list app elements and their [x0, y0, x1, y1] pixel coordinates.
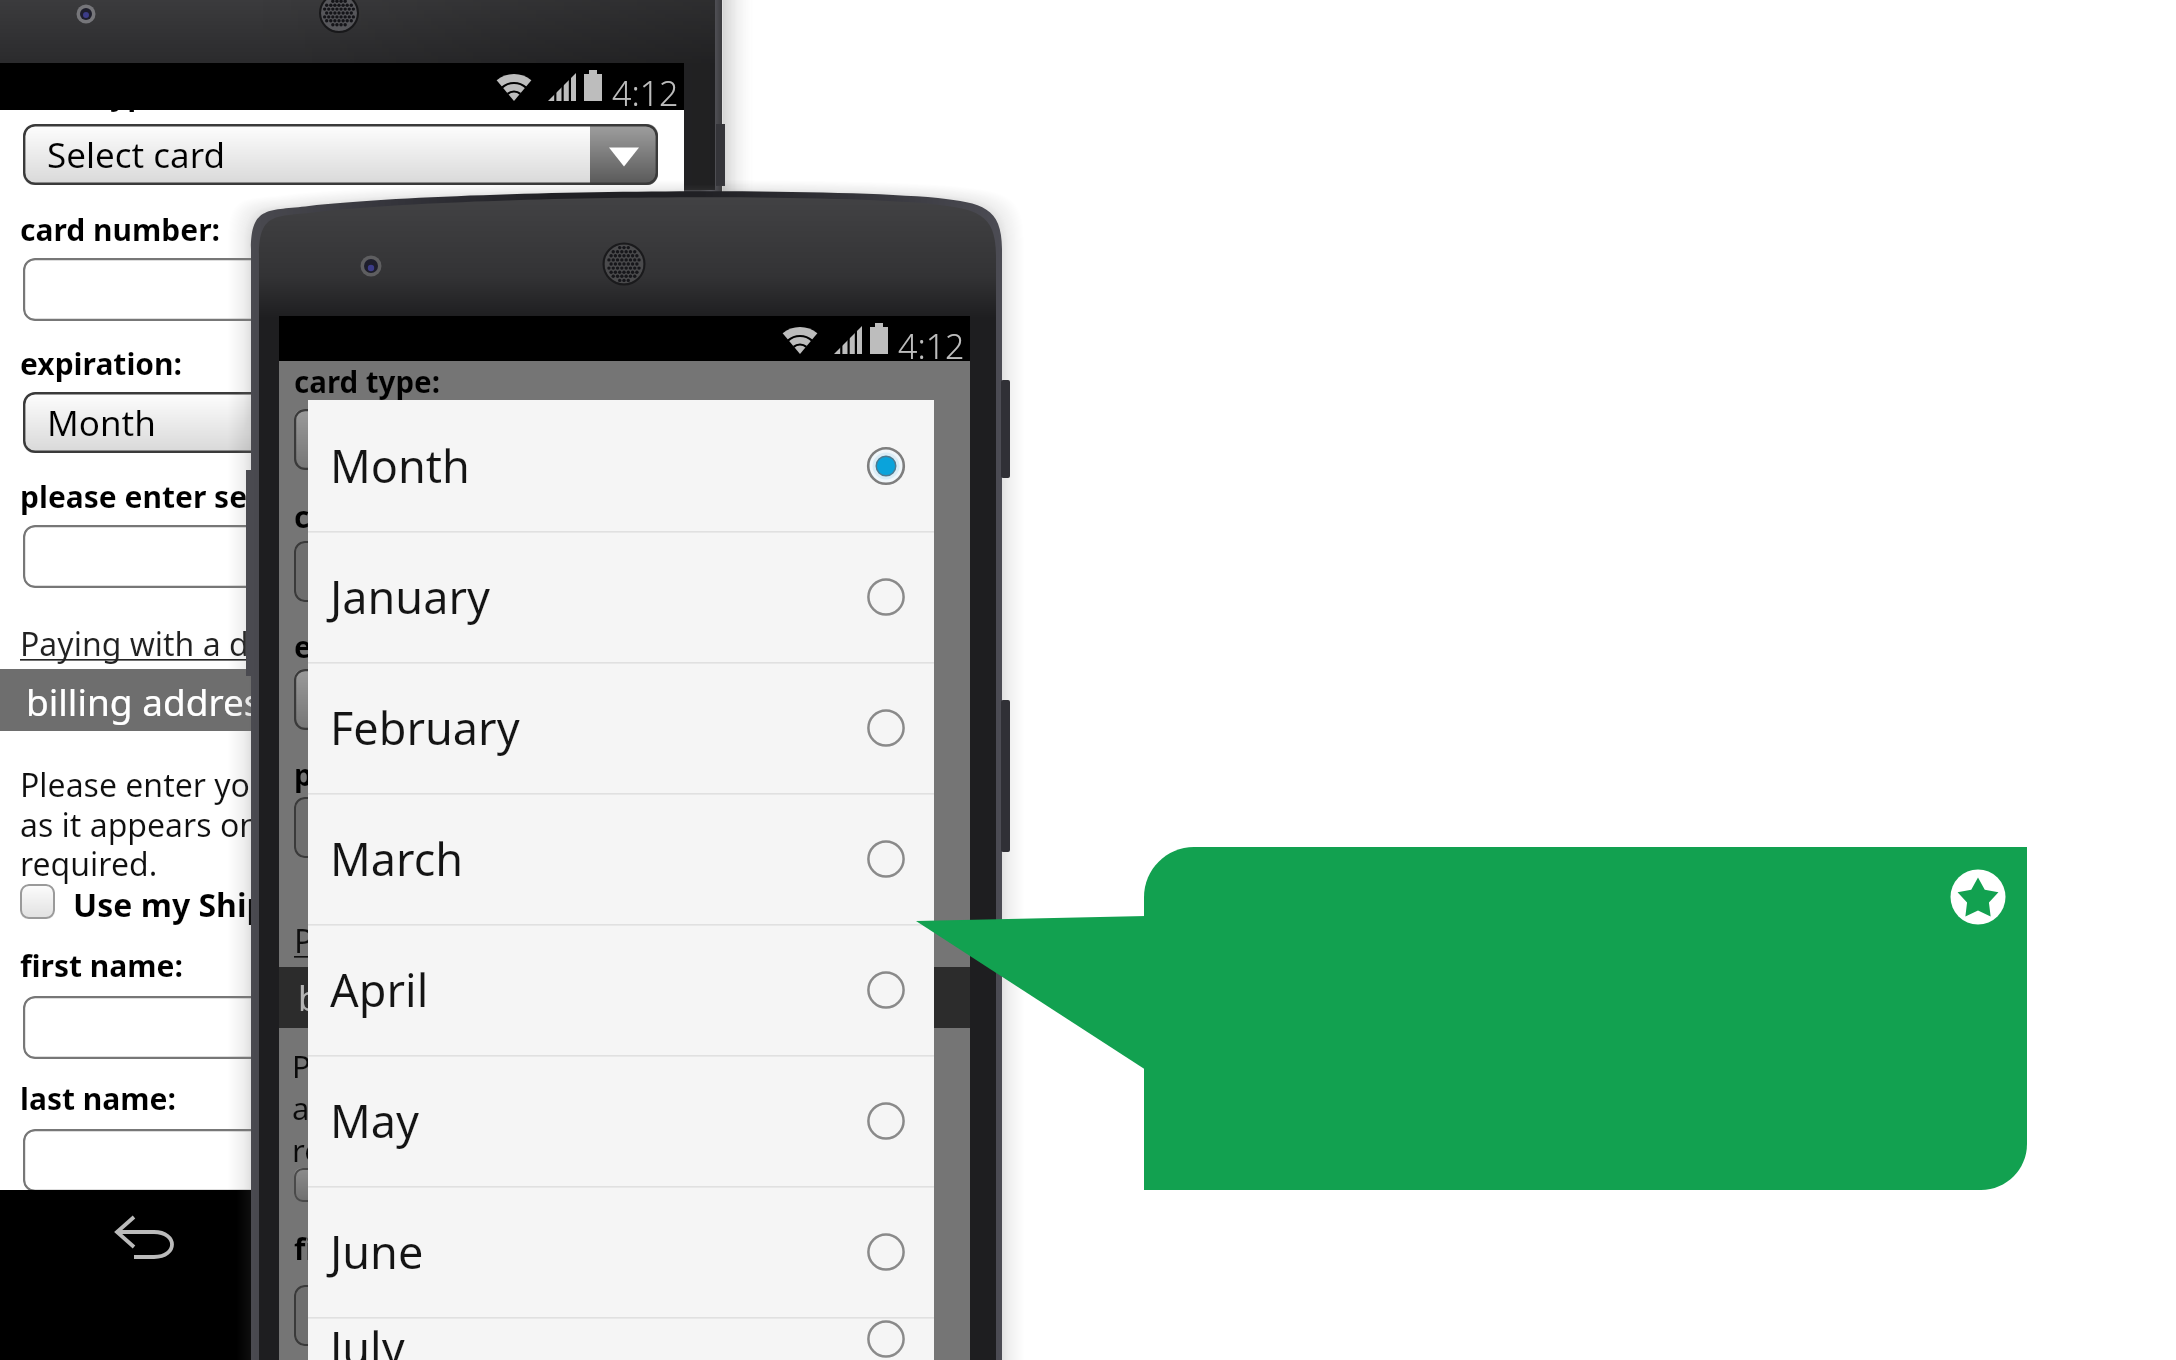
button[interactable]: Paying with a different card? — [20, 622, 447, 666]
staticText: card number: — [294, 496, 491, 536]
button[interactable]: July — [308, 1317, 934, 1360]
staticText: Use my Shipping Address — [346, 1161, 722, 1202]
staticText: Paying with a different card? — [294, 919, 721, 963]
button[interactable]: Use my Shipping Address checkbox — [294, 1168, 328, 1202]
button[interactable]: May — [308, 1055, 934, 1186]
staticText: Paying with a different card? — [20, 622, 447, 666]
staticText: billing address — [26, 676, 280, 726]
staticText: Month — [316, 677, 419, 722]
button[interactable]: Use my Shipping Address checkbox — [20, 884, 55, 919]
button[interactable]: April — [308, 924, 934, 1055]
button[interactable]: Month — [294, 669, 894, 730]
button[interactable]: Text field — [23, 258, 663, 321]
staticText: first name: — [20, 945, 183, 986]
staticText: first name: — [294, 1228, 455, 1268]
staticText: Month — [330, 435, 470, 496]
staticText: expiration: — [294, 626, 454, 666]
staticText: expiration: — [20, 343, 183, 384]
staticText: July — [330, 1317, 405, 1360]
button[interactable]: Select card — [23, 124, 658, 185]
button[interactable]: Text field — [23, 525, 663, 588]
button[interactable]: January — [308, 531, 934, 662]
button[interactable]: Text field — [23, 996, 663, 1059]
staticText: June — [330, 1221, 424, 1282]
staticText: 4:12 — [612, 70, 679, 116]
staticText: please enter security code: — [20, 476, 422, 517]
staticText: Please enter your billing address as it … — [292, 1045, 789, 1171]
staticText: please enter security code: — [294, 754, 690, 794]
staticText: Please enter your billing address as it … — [20, 763, 533, 885]
button[interactable]: billing address — [0, 669, 684, 731]
button[interactable]: Highlight callout — [1144, 847, 2027, 1190]
staticText: card number: — [20, 209, 220, 250]
button[interactable]: Text field — [294, 541, 894, 602]
button[interactable]: Text field — [294, 1285, 894, 1346]
staticText: Use my Shipping Address — [73, 883, 474, 927]
button[interactable]: February — [308, 662, 934, 793]
staticText: billing address — [298, 975, 531, 1021]
staticText: card type: — [294, 361, 440, 401]
button[interactable]: Select card — [294, 409, 894, 470]
button[interactable]: billing address — [279, 967, 970, 1028]
button[interactable]: June — [308, 1186, 934, 1317]
button[interactable]: Month — [23, 392, 430, 453]
staticText: April — [330, 959, 429, 1020]
staticText: Month — [47, 399, 156, 447]
button[interactable]: Paying with a different card? — [294, 919, 721, 963]
button[interactable]: Back — [98, 1196, 194, 1292]
staticText: Select card — [316, 417, 484, 462]
staticText: last name: — [20, 1078, 176, 1119]
staticText: card type: — [24, 110, 173, 114]
button[interactable]: Text field — [294, 797, 894, 858]
staticText: Select card — [47, 131, 225, 179]
button[interactable]: Text field — [23, 1129, 663, 1190]
staticText: January — [330, 566, 490, 627]
staticText: 4:12 — [898, 323, 965, 369]
staticText: May — [330, 1090, 420, 1151]
button[interactable]: March — [308, 793, 934, 924]
staticText: February — [330, 697, 520, 758]
button[interactable]: Month — [308, 400, 934, 531]
staticText: March — [330, 828, 464, 889]
